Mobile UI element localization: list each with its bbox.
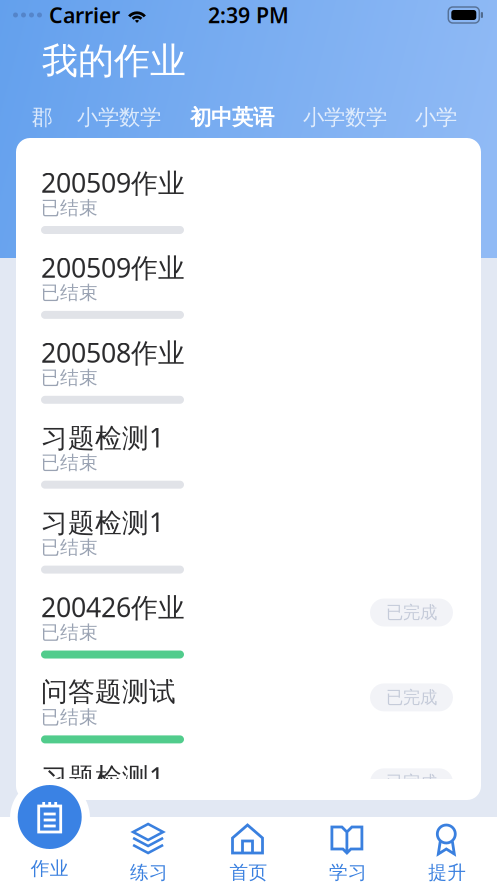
button[interactable]: 小学	[414, 101, 458, 133]
staticText: 小学	[415, 104, 457, 131]
staticText: 200426作业	[41, 589, 185, 625]
staticText: 2:39 PM	[208, 1, 289, 29]
button[interactable]: 习题检测1	[16, 761, 481, 846]
staticText: 已完成	[386, 772, 437, 793]
button[interactable]: 习题检测1	[16, 507, 481, 591]
staticText: 已结束	[41, 281, 98, 304]
staticText: 习题检测1	[41, 759, 164, 794]
staticText: 初中英语	[190, 104, 274, 131]
button[interactable]: 提升	[398, 801, 497, 883]
staticText: 练习	[130, 861, 168, 883]
staticText: 已结束	[41, 196, 98, 219]
button[interactable]: 习题检测1	[16, 422, 481, 507]
staticText: 小学数学	[303, 104, 387, 131]
button[interactable]: 问答题测试	[16, 676, 481, 761]
staticText: 200508作业	[41, 335, 185, 370]
button[interactable]: 初中英语	[188, 101, 276, 133]
staticText: 已结束	[41, 621, 98, 644]
staticText: 已结束	[41, 536, 98, 559]
staticText: 已结束	[41, 451, 98, 474]
staticText: 作业	[31, 857, 69, 880]
button[interactable]: 小学数学	[302, 101, 388, 133]
staticText: 我的作业	[42, 39, 186, 83]
staticText: 首页	[229, 861, 267, 883]
staticText: 学习	[329, 861, 367, 883]
button[interactable]: 首页	[199, 801, 298, 883]
staticText: 已完成	[386, 687, 437, 708]
button[interactable]: 练习	[99, 801, 199, 883]
staticText: 200509作业	[41, 165, 185, 200]
staticText: 习题检测1	[41, 504, 164, 540]
staticText: 已结束	[41, 366, 98, 389]
staticText: 问答题测试	[41, 675, 176, 708]
button[interactable]: 200426作业	[16, 591, 481, 676]
button[interactable]: 200509作业	[16, 167, 481, 252]
button[interactable]: 郡	[31, 101, 53, 133]
button[interactable]: 小学数学	[76, 101, 162, 133]
staticText: 200509作业	[41, 250, 185, 285]
button[interactable]: 作业	[0, 801, 99, 883]
button[interactable]: 200508作业	[16, 337, 481, 422]
staticText: 已结束	[41, 791, 98, 814]
staticText: 已完成	[386, 602, 437, 623]
button[interactable]: 200509作业	[16, 252, 481, 337]
staticText: 提升	[428, 861, 466, 883]
staticText: 郡	[31, 104, 52, 131]
staticText: 已结束	[41, 706, 98, 729]
button[interactable]: 学习	[298, 801, 398, 883]
staticText: 习题检测1	[41, 419, 164, 455]
staticText: 小学数学	[77, 104, 161, 131]
staticText: Carrier	[49, 1, 120, 29]
